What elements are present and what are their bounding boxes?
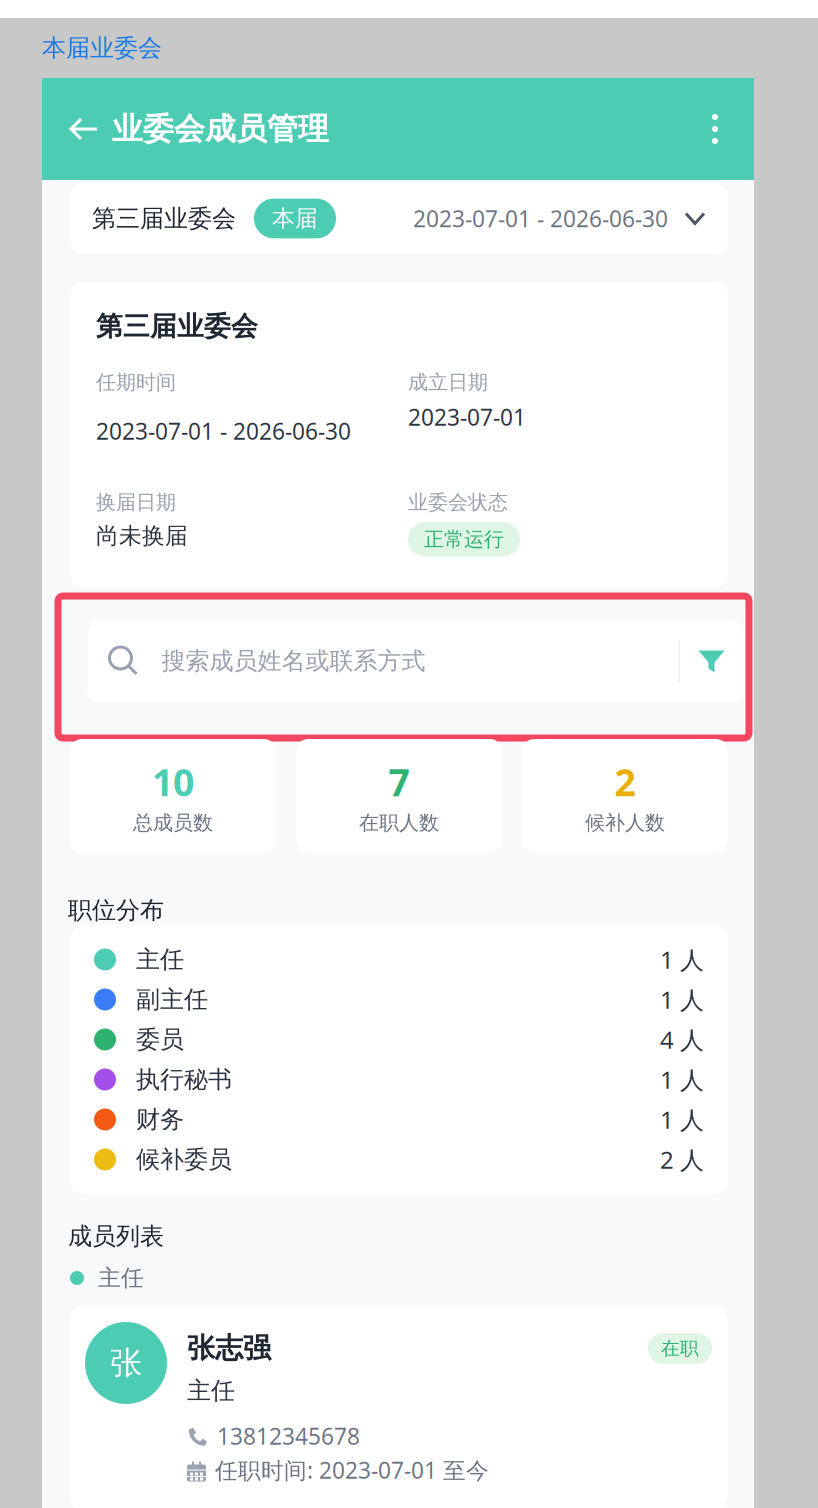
staticText: 候补委员 xyxy=(136,1145,232,1174)
staticText: 业委会成员管理 xyxy=(112,110,329,148)
staticText: 任期时间 xyxy=(96,370,176,395)
staticText: 2023-07-01 xyxy=(408,402,526,432)
staticText: 13812345678 xyxy=(217,1421,360,1451)
staticText: 成员列表 xyxy=(68,1221,164,1251)
staticText: 4 人 xyxy=(660,1024,704,1055)
staticText: 7 xyxy=(388,757,409,806)
button[interactable]: 2 xyxy=(522,739,728,853)
staticText: 主任 xyxy=(136,945,184,974)
staticText: 第三届业委会 xyxy=(96,310,258,343)
staticText: 候补人数 xyxy=(585,810,665,835)
staticText: 10 xyxy=(152,757,194,806)
staticText: 委员 xyxy=(136,1025,184,1054)
button[interactable]: 10 xyxy=(70,739,276,853)
button[interactable]: 返回 xyxy=(42,78,112,180)
staticText: 本届 xyxy=(272,205,318,232)
staticText: 张志强 xyxy=(187,1331,271,1365)
staticText: 张 xyxy=(110,1343,142,1383)
staticText: 成立日期 xyxy=(408,370,488,395)
staticText: 业委会状态 xyxy=(408,490,508,515)
staticText: 主任 xyxy=(98,1264,144,1292)
staticText: 2023-07-01 - 2026-06-30 xyxy=(96,416,351,446)
button[interactable]: 第三届业委会 xyxy=(42,180,754,254)
staticText: 财务 xyxy=(136,1105,184,1134)
staticText: 本届业委会 xyxy=(42,33,162,63)
staticText: 在职 xyxy=(661,1337,699,1360)
staticText: 搜索成员姓名或联系方式 xyxy=(161,646,425,676)
staticText: 任职时间: 2023-07-01 至今 xyxy=(215,1455,489,1485)
staticText: 换届日期 xyxy=(96,490,176,515)
staticText: 1 人 xyxy=(660,944,704,975)
staticText: 第三届业委会 xyxy=(92,204,236,233)
staticText: 2023-07-01 - 2026-06-30 xyxy=(413,203,668,233)
button[interactable]: 7 xyxy=(296,739,502,853)
staticText: 主任 xyxy=(187,1376,235,1405)
staticText: 2 xyxy=(614,757,635,806)
staticText: 副主任 xyxy=(136,985,208,1014)
staticText: 执行秘书 xyxy=(136,1065,232,1094)
staticText: 1 人 xyxy=(660,1104,704,1135)
staticText: 1 人 xyxy=(660,1064,704,1095)
staticText: 1 人 xyxy=(660,984,704,1015)
button[interactable]: 张 xyxy=(42,1305,754,1508)
staticText: 在职人数 xyxy=(359,810,439,835)
staticText: 正常运行 xyxy=(424,527,504,552)
staticText: 总成员数 xyxy=(133,810,213,835)
button[interactable]: 更多 xyxy=(702,78,754,180)
staticText: 职位分布 xyxy=(68,895,164,925)
staticText: 尚未换届 xyxy=(96,522,188,550)
staticText: 2 人 xyxy=(660,1144,704,1175)
button[interactable]: 筛选 xyxy=(679,619,743,702)
